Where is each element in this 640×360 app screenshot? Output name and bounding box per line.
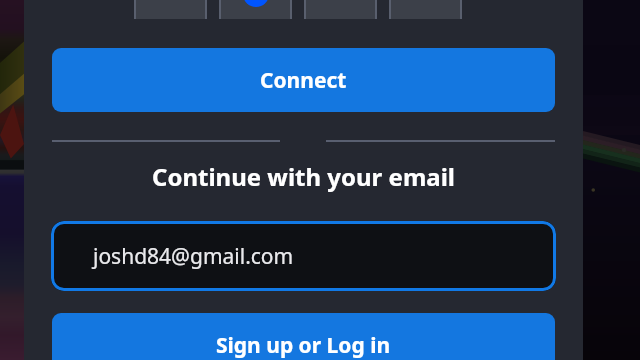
- button[interactable]: Sign in with provider 0: [134, 0, 207, 19]
- staticText: Sign up or Log in: [216, 331, 391, 360]
- button[interactable]: Sign in with provider 1: [219, 0, 292, 19]
- button[interactable]: Sign in with provider 2: [304, 0, 377, 19]
- button[interactable]: Connect: [52, 48, 555, 112]
- staticText: joshd84@gmail.com: [93, 242, 294, 271]
- staticText: Continue with your email: [24, 160, 583, 193]
- button[interactable]: Sign in with provider 3: [389, 0, 462, 19]
- staticText: Connect: [260, 66, 347, 95]
- button[interactable]: Sign up or Log in: [52, 313, 555, 360]
- button[interactable]: joshd84@gmail.com: [51, 221, 556, 291]
